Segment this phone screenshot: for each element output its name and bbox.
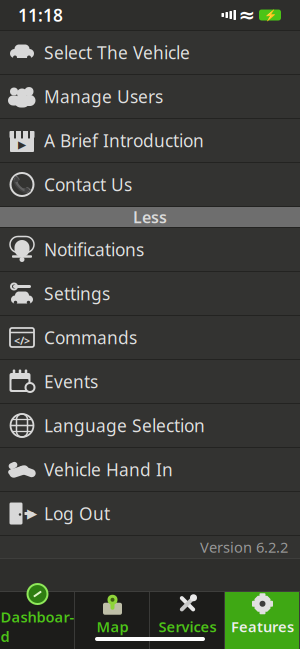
staticText: Log Out xyxy=(44,502,110,525)
staticText: Contact Us xyxy=(44,173,132,196)
button[interactable]: Map xyxy=(75,592,150,649)
button[interactable]: Select The Vehicle xyxy=(0,31,300,75)
staticText: A Brief Introduction xyxy=(44,129,204,152)
staticText: ⚡ xyxy=(263,9,276,21)
staticText: 📞 xyxy=(12,175,32,194)
staticText: </> xyxy=(14,333,30,348)
staticText: Commands xyxy=(44,326,137,349)
staticText: Select The Vehicle xyxy=(44,41,190,64)
button[interactable]: Language Selection xyxy=(0,404,300,448)
staticText: Language Selection xyxy=(44,414,205,437)
button[interactable]: 📞 xyxy=(0,163,300,207)
staticText: Notifications xyxy=(44,238,144,261)
staticText: Dashboard xyxy=(0,607,74,646)
staticText: Map xyxy=(96,617,128,636)
staticText: ▶ xyxy=(18,138,26,150)
button[interactable]: Manage Users xyxy=(0,75,300,119)
button[interactable]: Dashboard xyxy=(0,592,75,649)
button[interactable]: Less xyxy=(0,207,300,227)
button[interactable]: ▶ xyxy=(0,119,300,163)
button[interactable]: </> xyxy=(0,316,300,360)
staticText: ▶ xyxy=(27,506,37,521)
staticText: Vehicle Hand In xyxy=(44,458,173,481)
staticText: Settings xyxy=(44,282,110,305)
staticText: ≈ xyxy=(238,4,255,26)
staticText: Features xyxy=(231,617,294,636)
button[interactable]: Settings xyxy=(0,272,300,316)
staticText: Less xyxy=(133,206,167,228)
staticText: Events xyxy=(44,370,98,393)
staticText: Services xyxy=(158,617,216,636)
button[interactable]: Events xyxy=(0,360,300,404)
staticText: Manage Users xyxy=(44,85,163,108)
button[interactable]: Vehicle Hand In xyxy=(0,448,300,492)
button[interactable]: Features xyxy=(225,592,300,649)
button[interactable]: Services xyxy=(150,592,225,649)
staticText: Version 6.2.2 xyxy=(200,537,288,557)
button[interactable]: Notifications xyxy=(0,228,300,272)
button[interactable]: ▶ xyxy=(0,492,300,536)
staticText: 11:18 xyxy=(18,3,63,26)
